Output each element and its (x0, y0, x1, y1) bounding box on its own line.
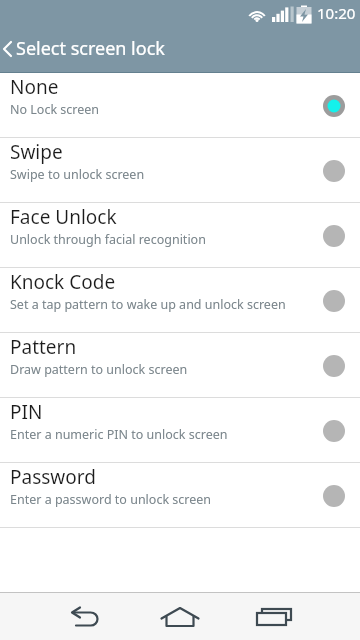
button[interactable] (135, 592, 225, 640)
staticText: PIN (10, 399, 43, 425)
staticText: Unlock through facial recognition (10, 231, 206, 248)
staticText: Draw pattern to unlock screen (10, 361, 188, 378)
button[interactable]: Knock Code (0, 268, 360, 333)
staticText: Knock Code (10, 269, 116, 295)
button[interactable]: Select screen lock (0, 25, 360, 72)
staticText: No Lock screen (10, 101, 100, 118)
staticText: Enter a numeric PIN to unlock screen (10, 426, 228, 443)
staticText: None (10, 74, 59, 100)
staticText: Swipe to unlock screen (10, 166, 145, 183)
staticText: 10:20 (317, 3, 356, 23)
button[interactable] (229, 592, 319, 640)
staticText: Password (10, 464, 96, 490)
staticText: Enter a password to unlock screen (10, 491, 212, 508)
button[interactable] (39, 592, 129, 640)
button[interactable]: Face Unlock (0, 203, 360, 268)
staticText: Set a tap pattern to wake up and unlock … (10, 296, 286, 313)
staticText: Select screen lock (16, 36, 165, 61)
button[interactable]: Pattern (0, 333, 360, 398)
button[interactable]: None (0, 73, 360, 138)
button[interactable]: Swipe (0, 138, 360, 203)
staticText: Pattern (10, 334, 77, 360)
staticText: Swipe (10, 139, 63, 165)
staticText: Face Unlock (10, 204, 117, 230)
button[interactable]: PIN (0, 398, 360, 463)
button[interactable]: Password (0, 463, 360, 528)
